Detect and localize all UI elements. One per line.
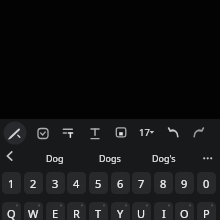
button[interactable] xyxy=(162,121,186,145)
staticText: 5 xyxy=(95,176,102,191)
staticText: 8 xyxy=(160,176,167,191)
button[interactable] xyxy=(83,121,107,145)
button[interactable]: 17 xyxy=(131,120,157,144)
staticText: W xyxy=(28,206,39,220)
button[interactable]: 0 xyxy=(197,172,216,194)
staticText: 1 xyxy=(8,176,15,191)
button[interactable]: P xyxy=(197,202,216,220)
staticText: 4 xyxy=(73,176,80,191)
button[interactable] xyxy=(31,121,55,145)
staticText: Y xyxy=(117,206,124,220)
button[interactable] xyxy=(0,146,24,170)
staticText: I xyxy=(162,206,166,220)
button[interactable]: 4 xyxy=(67,172,86,194)
button[interactable]: Y xyxy=(111,202,130,220)
button[interactable]: 6 xyxy=(111,172,130,194)
button[interactable]: 5 xyxy=(89,172,108,194)
staticText: 6 xyxy=(117,176,124,191)
button[interactable]: I xyxy=(154,202,173,220)
button[interactable]: 3 xyxy=(46,172,65,194)
button[interactable] xyxy=(186,121,210,145)
button[interactable]: U xyxy=(132,202,151,220)
staticText: Dog's xyxy=(152,152,176,164)
button[interactable]: 9 xyxy=(175,172,194,194)
button[interactable]: 8 xyxy=(154,172,173,194)
staticText: Dogs xyxy=(99,152,121,164)
button[interactable]: E xyxy=(46,202,65,220)
staticText: 7 xyxy=(138,176,145,191)
button[interactable] xyxy=(3,121,27,145)
button[interactable]: R xyxy=(67,202,86,220)
staticText: 3 xyxy=(52,176,59,191)
staticText: 17 xyxy=(139,126,150,139)
staticText: Dog xyxy=(46,152,64,164)
button[interactable] xyxy=(56,120,80,144)
staticText: T xyxy=(95,206,102,220)
button[interactable] xyxy=(109,120,133,144)
staticText: 0 xyxy=(203,176,210,191)
button[interactable]: Dog xyxy=(29,146,81,170)
staticText: Q xyxy=(7,206,16,220)
button[interactable]: 1 xyxy=(2,172,21,194)
button[interactable]: T xyxy=(89,202,108,220)
staticText: O xyxy=(180,206,189,220)
staticText: 2 xyxy=(30,176,37,191)
button[interactable]: O xyxy=(175,202,194,220)
button[interactable]: W xyxy=(24,202,43,220)
button[interactable]: 7 xyxy=(132,172,151,194)
button[interactable]: Dogs xyxy=(84,146,136,170)
button[interactable] xyxy=(196,146,220,170)
button[interactable]: Dog's xyxy=(138,146,190,170)
staticText: U xyxy=(137,206,146,220)
button[interactable]: Q xyxy=(2,202,21,220)
staticText: P xyxy=(203,206,210,220)
staticText: R xyxy=(73,206,80,220)
staticText: 9 xyxy=(181,176,188,191)
staticText: E xyxy=(52,206,59,220)
button[interactable]: 2 xyxy=(24,172,43,194)
